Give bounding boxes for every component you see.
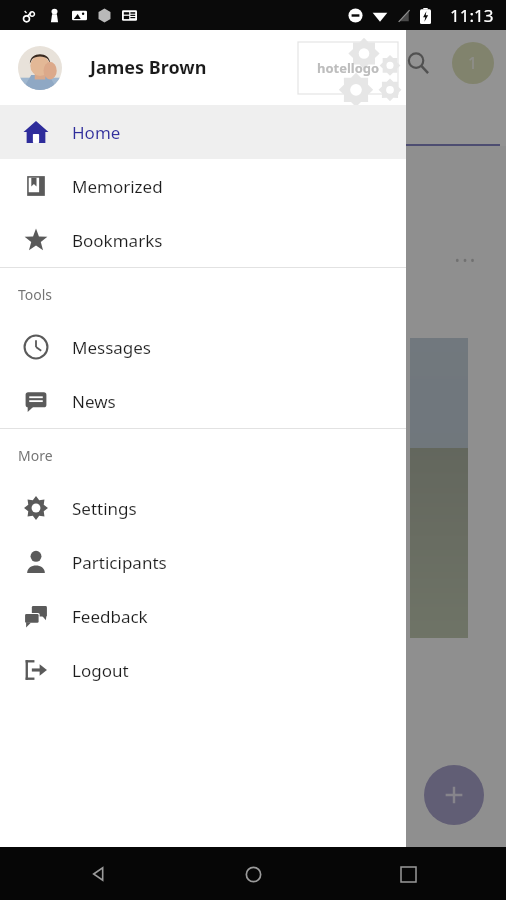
staticText: News xyxy=(72,390,116,413)
staticText: Home xyxy=(72,121,121,144)
button[interactable]: News xyxy=(0,374,406,428)
button[interactable]: Add xyxy=(424,765,484,825)
staticText: Participants xyxy=(72,551,167,574)
button[interactable]: Bookmarks xyxy=(0,213,406,267)
button[interactable]: Search xyxy=(398,43,438,83)
staticText: More xyxy=(18,446,53,465)
button[interactable]: hotellogo xyxy=(298,42,398,94)
staticText: Settings xyxy=(72,497,137,520)
staticText: hotellogo xyxy=(317,59,380,77)
staticText: Memorized xyxy=(72,175,163,198)
button[interactable]: Recent apps xyxy=(388,854,428,894)
staticText: 1 xyxy=(468,52,478,74)
staticText: Tools xyxy=(18,285,53,304)
button[interactable]: Feedback xyxy=(0,589,406,643)
staticText: 11:13 xyxy=(450,4,494,27)
button[interactable]: Messages xyxy=(0,320,406,374)
button[interactable]: Settings xyxy=(0,481,406,535)
staticText: Messages xyxy=(72,336,152,359)
button[interactable]: Memorized xyxy=(0,159,406,213)
staticText: Bookmarks xyxy=(72,229,163,252)
staticText: Feedback xyxy=(72,605,148,628)
button[interactable]: 1 xyxy=(452,42,494,84)
staticText: • • • xyxy=(455,252,475,268)
button[interactable]: Back xyxy=(78,854,118,894)
staticText: Logout xyxy=(72,659,129,682)
button[interactable]: Logout xyxy=(0,643,406,697)
button[interactable]: Participants xyxy=(0,535,406,589)
staticText: James Brown xyxy=(90,55,207,80)
button[interactable]: Home xyxy=(0,105,406,159)
button[interactable]: Home xyxy=(233,854,273,894)
button[interactable]: James Brown xyxy=(0,30,406,105)
